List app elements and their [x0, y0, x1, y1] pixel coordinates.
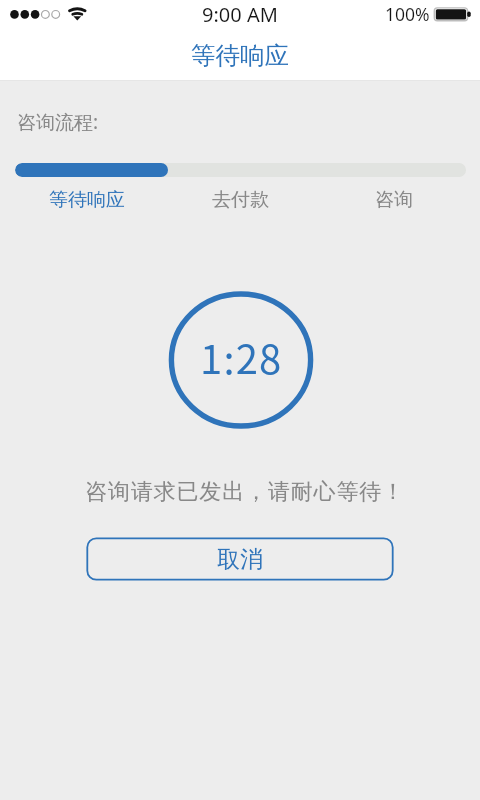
- staticText: 咨询: [375, 188, 413, 212]
- staticText: 9:00 AM: [202, 1, 278, 28]
- staticText: 去付款: [212, 188, 269, 212]
- staticText: 100%: [385, 2, 430, 26]
- other: Status icons: [0, 0, 480, 30]
- staticText: 等待响应: [49, 188, 125, 212]
- button[interactable]: 去付款: [164, 188, 317, 212]
- staticText: 1:28: [200, 328, 283, 386]
- staticText: 咨询请求已发出，请耐心等待！: [5, 478, 480, 506]
- button[interactable]: 等待响应: [10, 188, 164, 212]
- button[interactable]: 咨询: [317, 188, 470, 212]
- button[interactable]: 取消: [86, 537, 394, 581]
- staticText: 咨询流程:: [17, 109, 99, 135]
- staticText: 等待响应: [191, 40, 289, 71]
- staticText: 取消: [217, 545, 263, 574]
